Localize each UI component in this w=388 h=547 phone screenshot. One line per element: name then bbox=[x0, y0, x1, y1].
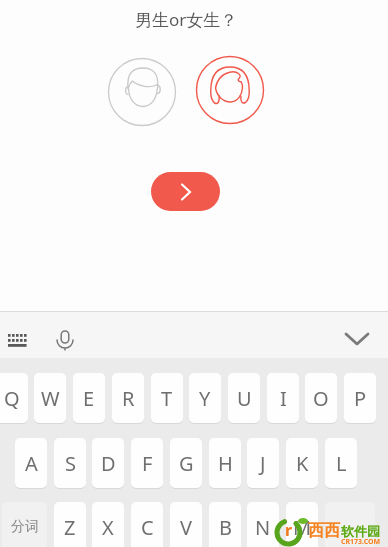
staticText: 西西 bbox=[308, 521, 340, 541]
button[interactable]: M bbox=[286, 502, 318, 547]
button[interactable] bbox=[151, 172, 220, 211]
button[interactable]: V bbox=[170, 502, 202, 547]
staticText: Y bbox=[199, 385, 211, 412]
button[interactable]: X bbox=[92, 502, 124, 547]
staticText: D bbox=[101, 450, 116, 477]
staticText: X bbox=[102, 514, 114, 541]
staticText: O bbox=[313, 385, 329, 412]
staticText: N bbox=[255, 514, 271, 541]
button[interactable] bbox=[106, 56, 178, 128]
staticText: 软件园 bbox=[341, 523, 380, 539]
button[interactable]: R bbox=[112, 373, 144, 423]
staticText: A bbox=[25, 450, 38, 477]
button[interactable] bbox=[194, 54, 266, 126]
button[interactable]: F bbox=[131, 438, 163, 488]
staticText: J bbox=[260, 450, 266, 477]
button[interactable]: Y bbox=[189, 373, 221, 423]
staticText: R bbox=[122, 385, 135, 412]
button[interactable] bbox=[4, 328, 32, 352]
staticText: r bbox=[285, 519, 293, 541]
staticText: C bbox=[141, 514, 154, 541]
button[interactable]: Q bbox=[0, 373, 28, 423]
staticText: F bbox=[142, 450, 153, 477]
staticText: W bbox=[41, 385, 60, 412]
staticText: T bbox=[161, 385, 173, 412]
button[interactable]: P bbox=[344, 373, 376, 423]
button[interactable]: H bbox=[209, 438, 241, 488]
button[interactable]: S bbox=[54, 438, 86, 488]
staticText: CR173.COM bbox=[341, 537, 381, 547]
button[interactable]: U bbox=[228, 373, 260, 423]
staticText: 男生or女生？ bbox=[135, 8, 238, 31]
staticText: G bbox=[179, 450, 194, 477]
staticText: S bbox=[65, 450, 76, 477]
button[interactable]: G bbox=[170, 438, 202, 488]
button[interactable]: J bbox=[247, 438, 279, 488]
button[interactable]: K bbox=[286, 438, 318, 488]
staticText: B bbox=[219, 514, 232, 541]
staticText: U bbox=[237, 385, 252, 412]
button[interactable]: B bbox=[209, 502, 241, 547]
button[interactable]: N bbox=[247, 502, 279, 547]
staticText: P bbox=[354, 385, 367, 412]
staticText: K bbox=[296, 450, 309, 477]
staticText: M bbox=[293, 514, 312, 541]
button[interactable]: L bbox=[325, 438, 357, 488]
button[interactable]: A bbox=[15, 438, 47, 488]
button[interactable]: I bbox=[267, 373, 299, 423]
button[interactable]: Z bbox=[54, 502, 86, 547]
staticText: E bbox=[83, 385, 95, 412]
button[interactable]: W bbox=[34, 373, 66, 423]
button[interactable] bbox=[325, 502, 375, 547]
button[interactable] bbox=[338, 326, 376, 352]
staticText: Z bbox=[64, 514, 76, 541]
button[interactable]: O bbox=[305, 373, 337, 423]
staticText: I bbox=[280, 385, 287, 412]
staticText: H bbox=[218, 450, 233, 477]
button[interactable]: E bbox=[73, 373, 105, 423]
staticText: L bbox=[336, 450, 347, 477]
staticText: 分词 bbox=[11, 518, 39, 536]
button[interactable]: T bbox=[151, 373, 183, 423]
button[interactable]: 分词 bbox=[2, 502, 47, 547]
staticText: V bbox=[180, 514, 192, 541]
button[interactable]: C bbox=[131, 502, 163, 547]
button[interactable] bbox=[52, 327, 78, 353]
button[interactable]: D bbox=[92, 438, 124, 488]
staticText: Q bbox=[4, 385, 20, 412]
